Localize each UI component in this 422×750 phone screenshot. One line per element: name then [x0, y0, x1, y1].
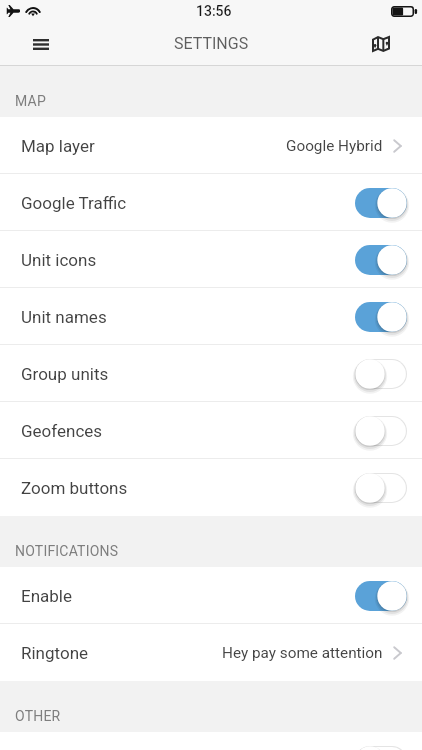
button[interactable]: Zoom buttons — [0, 459, 422, 516]
staticText: Enable — [21, 586, 72, 606]
staticText: Geofences — [21, 421, 103, 441]
button[interactable]: Unit icons — [0, 231, 422, 288]
staticText: Ringtone — [21, 643, 89, 663]
button[interactable]: Group units — [0, 345, 422, 402]
button[interactable]: Ringtone — [0, 624, 422, 681]
button[interactable]: Map layer — [0, 117, 422, 174]
staticText: Google Traffic — [21, 193, 127, 213]
staticText: SETTINGS — [174, 34, 249, 53]
staticText: NOTIFICATIONS — [15, 543, 119, 559]
button[interactable]: Menu — [26, 29, 56, 59]
staticText: Hey pay some attention — [222, 644, 383, 662]
staticText: Group units — [21, 364, 109, 384]
staticText: Google Hybrid — [286, 137, 383, 155]
button[interactable]: Google Traffic — [0, 174, 422, 231]
button[interactable]: Unit names — [0, 288, 422, 345]
staticText: Map layer — [21, 136, 95, 156]
staticText: OTHER — [15, 708, 61, 724]
button[interactable]: Enable — [0, 567, 422, 624]
button[interactable]: Geofences — [0, 402, 422, 459]
staticText: 13:56 — [196, 3, 232, 19]
staticText: Unit icons — [21, 250, 97, 270]
button[interactable]: Map — [366, 29, 396, 59]
staticText: Unit names — [21, 307, 107, 327]
staticText: MAP — [15, 93, 46, 109]
staticText: Zoom buttons — [21, 478, 128, 498]
